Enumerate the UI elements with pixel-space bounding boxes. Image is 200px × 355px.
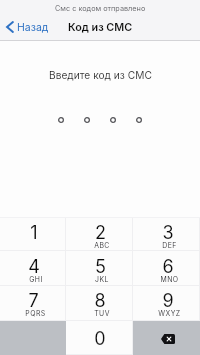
button[interactable]: 1 [0, 218, 65, 250]
staticText: 8 [94, 290, 106, 312]
staticText: Код из СМС [68, 21, 133, 34]
staticText: 3 [162, 222, 174, 244]
staticText: PQRS [25, 309, 46, 317]
button[interactable]: 6 [133, 251, 199, 285]
staticText: 2 [95, 222, 106, 244]
staticText: DEF [162, 241, 177, 249]
staticText: TUV [94, 309, 110, 317]
staticText: 5 [95, 256, 106, 278]
button[interactable]: Backspace [133, 321, 200, 355]
button[interactable]: Назад [0, 18, 53, 37]
staticText: 1 [30, 222, 38, 244]
staticText: 7 [28, 290, 39, 312]
staticText: ABC [94, 241, 110, 249]
staticText: GHI [29, 275, 43, 283]
staticText: 0 [94, 328, 106, 350]
button[interactable]: 4 [0, 251, 65, 285]
staticText: Введите код из СМС [49, 69, 152, 81]
staticText: 6 [162, 256, 174, 278]
button[interactable]: 5 [66, 251, 132, 285]
staticText: Назад [17, 21, 49, 34]
staticText: WXYZ [158, 309, 181, 317]
staticText: 9 [162, 290, 174, 312]
staticText: MNO [160, 275, 179, 283]
staticText: Смс с кодом отправлено [55, 4, 146, 13]
button[interactable]: 7 [0, 286, 65, 320]
button[interactable]: 2 [66, 218, 132, 250]
button[interactable]: 8 [66, 286, 132, 320]
button[interactable]: 3 [133, 218, 199, 250]
button[interactable]: 0 [66, 321, 132, 354]
button[interactable]: 9 [133, 286, 199, 320]
staticText: 4 [28, 256, 40, 278]
staticText: JKL [95, 275, 109, 283]
